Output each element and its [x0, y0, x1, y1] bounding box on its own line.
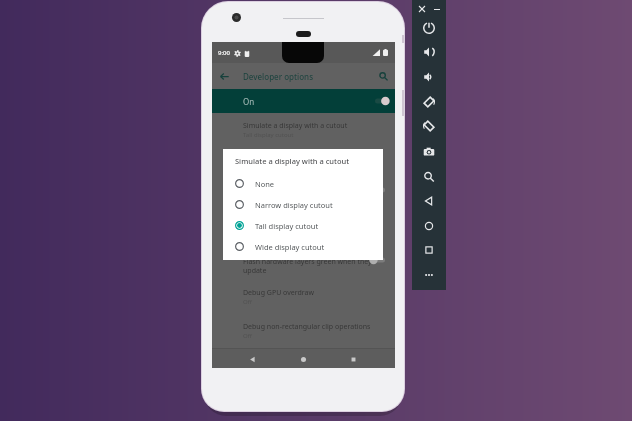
button[interactable]: Home: [295, 351, 311, 367]
button[interactable]: Zoom: [420, 168, 438, 186]
button[interactable]: Back: [420, 192, 438, 210]
button[interactable]: Simulate a display with a cutout: [212, 113, 395, 146]
button[interactable]: Overview: [420, 241, 438, 259]
button[interactable]: Back: [244, 351, 260, 367]
button[interactable]: Flash hardware layers green when they up…: [212, 249, 395, 282]
button[interactable]: Search: [376, 69, 390, 83]
staticText: Enable GPU debug layers: [243, 154, 326, 164]
staticText: Narrow display cutout: [255, 200, 333, 210]
staticText: Simulate a display with a cutout: [243, 121, 348, 131]
button[interactable]: On: [212, 89, 395, 113]
button[interactable]: Minimize: [432, 4, 442, 14]
button[interactable]: Volume down: [420, 68, 438, 86]
button[interactable]: Tall display cutout: [223, 215, 383, 236]
button[interactable]: Narrow display cutout: [223, 194, 383, 215]
staticText: Debug GPU overdraw: [243, 288, 314, 298]
staticText: Simulate a display with a cutout: [235, 156, 350, 166]
button[interactable]: Disable HW overlays: [212, 212, 395, 245]
button[interactable]: Volume up: [420, 43, 438, 61]
staticText: Tall display cutout: [255, 221, 319, 231]
staticText: On: [243, 96, 255, 107]
staticText: Disable HW overlays: [243, 220, 310, 230]
button[interactable]: Home: [420, 217, 438, 235]
button[interactable]: Back: [217, 69, 231, 83]
button[interactable]: Close: [417, 4, 427, 14]
button[interactable]: Force MSAA: [212, 179, 395, 212]
button[interactable]: Take screenshot: [420, 143, 438, 161]
button[interactable]: Debug GPU overdraw: [212, 280, 395, 313]
staticText: 9:00: [218, 49, 230, 57]
staticText: Off: [243, 298, 252, 306]
button[interactable]: Power: [420, 19, 438, 37]
button[interactable]: Rotate left: [420, 93, 438, 111]
button[interactable]: Recents: [345, 351, 361, 367]
button[interactable]: Wide display cutout: [223, 236, 383, 257]
button[interactable]: None: [223, 173, 383, 194]
button[interactable]: Rotate right: [420, 117, 438, 135]
button[interactable]: More: [420, 266, 438, 284]
staticText: Tall display cutout: [243, 131, 294, 139]
staticText: Debug non-rectangular clip operations: [243, 322, 371, 332]
staticText: Developer options: [243, 71, 314, 82]
staticText: Wide display cutout: [255, 242, 325, 252]
staticText: None: [255, 179, 275, 189]
button[interactable]: Enable GPU debug layers: [212, 146, 395, 179]
staticText: Flash hardware layers green when they up…: [243, 257, 376, 275]
button[interactable]: Debug non-rectangular clip operations: [212, 314, 395, 347]
staticText: Off: [243, 332, 252, 340]
